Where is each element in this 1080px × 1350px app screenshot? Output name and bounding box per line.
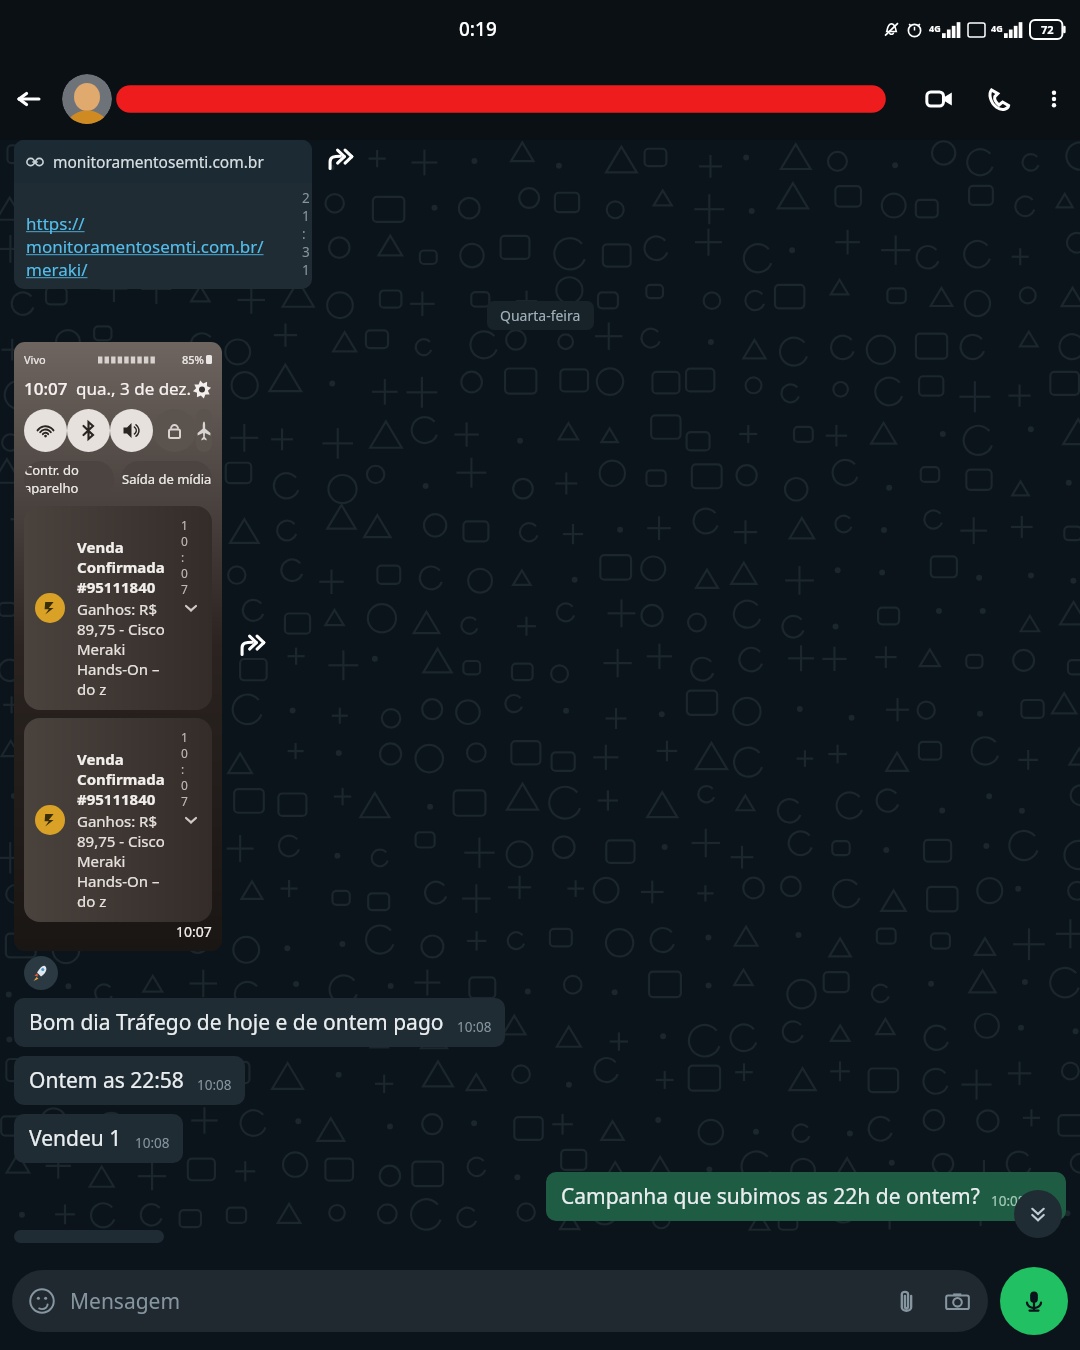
staticText: Bom dia Tráfego de hoje e de ontem pago xyxy=(29,1008,444,1037)
button[interactable]: Forwarded xyxy=(326,144,360,178)
button[interactable]: Venda Confirmada #95111840 xyxy=(24,718,212,922)
staticText: 10:08 xyxy=(457,1018,492,1036)
button[interactable]: Settings xyxy=(192,378,212,400)
button[interactable]: Camera xyxy=(942,1286,972,1316)
staticText: 72 xyxy=(1041,22,1054,37)
button[interactable]: Mensagem xyxy=(12,1270,988,1332)
button[interactable]: More options xyxy=(1028,73,1080,125)
button[interactable]: Contr. do aparelho xyxy=(24,461,114,497)
staticText: 10:08 xyxy=(197,1076,232,1094)
button[interactable]: Forwarded xyxy=(238,630,272,664)
staticText: Campanha que subimos as 22h de ontem? xyxy=(561,1182,980,1211)
staticText: Ontem as 22:58 xyxy=(29,1066,184,1095)
staticText: 0:19 xyxy=(459,16,497,42)
staticText: Quarta-feira xyxy=(500,306,581,325)
staticText: 10:07 xyxy=(176,922,212,941)
button[interactable]: Ontem as 22:58 xyxy=(14,1056,245,1105)
button[interactable]: Back xyxy=(0,70,58,128)
staticText: Saída de mídia xyxy=(122,470,212,488)
staticText: https://monitoramentosemti.com.br/meraki… xyxy=(26,212,302,281)
button[interactable]: Saída de mídia xyxy=(121,461,212,497)
button[interactable]: Scroll to bottom xyxy=(1014,1190,1062,1238)
staticText: Vivo xyxy=(24,352,46,367)
staticText: Ganhos: R$ 89,75 - Cisco Meraki xyxy=(77,811,181,871)
button[interactable]: Record voice message xyxy=(1000,1267,1068,1335)
staticText: qua., 3 de dez. xyxy=(76,377,192,400)
button[interactable]: monitoramentosemti.com.br xyxy=(14,140,312,289)
button[interactable]: Bom dia Tráfego de hoje e de ontem pago xyxy=(14,998,505,1047)
button[interactable]: Venda Confirmada #95111840 xyxy=(24,506,212,710)
button[interactable]: Voice call xyxy=(970,70,1028,128)
staticText: 85% xyxy=(182,352,204,367)
staticText: 10:08 xyxy=(991,1192,1026,1210)
staticText: Hands-On – do z xyxy=(77,871,181,911)
button[interactable]: Quick setting xyxy=(153,409,196,452)
button[interactable]: Vendeu 1 xyxy=(14,1114,183,1163)
staticText: Vendeu 1 xyxy=(29,1124,122,1153)
staticText: Ganhos: R$ 89,75 - Cisco Meraki xyxy=(77,599,181,659)
button[interactable]: Video call xyxy=(908,68,970,130)
button[interactable]: Reaction rocket xyxy=(24,956,58,990)
staticText: 10:08 xyxy=(135,1134,170,1152)
staticText: Mensagem xyxy=(70,1287,181,1316)
button[interactable]: Ou seja xyxy=(14,1230,164,1243)
button[interactable]: Quick setting xyxy=(196,409,212,452)
staticText: monitoramentosemti.com.br xyxy=(53,151,264,172)
staticText: 10:07 xyxy=(24,377,68,400)
staticText: 4G xyxy=(929,22,941,34)
button[interactable]: Quick setting xyxy=(24,409,67,452)
button[interactable]: Vivo xyxy=(14,342,222,951)
button[interactable]: Quick setting xyxy=(110,409,153,452)
staticText: Contr. do aparelho xyxy=(24,461,114,497)
staticText: Venda Confirmada #95111840 xyxy=(77,749,181,809)
button[interactable]: Campanha que subimos as 22h de ontem? xyxy=(546,1172,1066,1221)
button[interactable] xyxy=(120,58,908,140)
staticText: Venda Confirmada #95111840 xyxy=(77,537,181,597)
staticText: Hands-On – do z xyxy=(77,659,181,699)
button[interactable]: Attach xyxy=(892,1286,922,1316)
button[interactable]: Quick setting xyxy=(67,409,110,452)
staticText: 4G xyxy=(991,22,1003,34)
button[interactable]: Profile photo xyxy=(62,74,112,124)
